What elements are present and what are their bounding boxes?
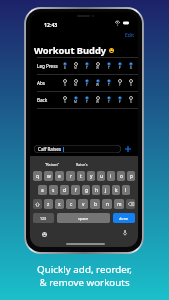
button[interactable]: k <box>112 185 120 195</box>
staticText: Abs <box>37 80 45 86</box>
staticText: space <box>78 216 89 221</box>
staticText: c <box>70 201 73 208</box>
button[interactable]: i <box>107 171 115 181</box>
button[interactable]: q <box>33 171 42 181</box>
button[interactable]: n <box>102 199 112 209</box>
staticText: u <box>100 173 103 180</box>
staticText: T <box>86 83 88 87</box>
staticText: a <box>41 187 44 194</box>
staticText: S <box>64 66 66 70</box>
button[interactable]: “Raisen” <box>44 161 61 168</box>
button[interactable]: b <box>90 199 100 209</box>
button[interactable]: g <box>82 185 90 195</box>
button[interactable]: Edit <box>121 30 138 41</box>
staticText: Edit <box>125 32 134 39</box>
button[interactable]: Dictation <box>122 230 128 236</box>
staticText: s <box>52 187 55 194</box>
staticText: S <box>130 83 132 87</box>
button[interactable]: Add workout <box>123 144 133 154</box>
button[interactable]: t <box>77 171 85 181</box>
staticText: S <box>130 100 132 104</box>
button[interactable]: m <box>114 199 124 209</box>
button[interactable]: r <box>66 171 75 181</box>
staticText: i <box>110 173 112 180</box>
staticText: p <box>130 173 133 180</box>
button[interactable]: v <box>78 199 88 209</box>
button[interactable]: space <box>57 213 110 223</box>
staticText: T <box>86 66 88 70</box>
staticText: r <box>70 173 72 180</box>
button[interactable]: j <box>102 185 110 195</box>
button[interactable]: done <box>113 213 135 223</box>
button[interactable]: u <box>97 171 105 181</box>
button[interactable]: Calf Raises <box>34 145 121 153</box>
button[interactable]: f <box>71 185 80 195</box>
button[interactable]: d <box>60 185 69 195</box>
button[interactable]: 123 <box>33 213 54 223</box>
staticText: l <box>125 187 127 194</box>
button[interactable]: s <box>49 185 58 195</box>
button[interactable]: Abs <box>30 75 138 91</box>
staticText: T <box>108 66 110 70</box>
staticText: x <box>58 201 61 208</box>
button[interactable]: Backspace <box>126 199 135 209</box>
button[interactable]: Emoji keyboard <box>41 231 47 237</box>
button[interactable]: Leg Press <box>30 58 138 74</box>
staticText: T <box>86 100 88 104</box>
staticText: M <box>74 66 77 70</box>
staticText: W <box>96 83 99 87</box>
staticText: Back <box>37 97 48 103</box>
staticText: m <box>117 201 122 208</box>
staticText: M <box>74 83 77 87</box>
staticText: S <box>130 66 132 70</box>
button[interactable]: a <box>38 185 47 195</box>
button[interactable]: o <box>117 171 125 181</box>
staticText: & remove workouts <box>39 276 130 289</box>
staticText: g <box>85 187 88 194</box>
button[interactable]: Back <box>30 92 138 108</box>
button[interactable]: y <box>87 171 95 181</box>
button[interactable]: Shift <box>33 199 42 209</box>
staticText: h <box>95 187 98 194</box>
staticText: M <box>74 100 77 104</box>
button[interactable]: z <box>44 199 53 209</box>
staticText: F <box>119 83 121 87</box>
staticText: e <box>58 173 61 180</box>
button[interactable]: w <box>44 171 53 181</box>
button[interactable]: c <box>66 199 76 209</box>
staticText: T <box>108 83 110 87</box>
staticText: T <box>108 100 110 104</box>
staticText: Leg Press <box>37 63 58 69</box>
staticText: o <box>120 173 123 180</box>
staticText: f <box>75 187 77 194</box>
staticText: “Raisen” <box>45 162 60 167</box>
staticText: n <box>106 201 109 208</box>
button[interactable]: e <box>55 171 64 181</box>
staticText: w <box>47 173 51 180</box>
staticText: k <box>115 187 118 194</box>
staticText: b <box>94 201 97 208</box>
staticText: F <box>119 66 121 70</box>
staticText: W <box>96 100 99 104</box>
staticText: F <box>119 100 121 104</box>
staticText: 123 <box>40 216 47 221</box>
button[interactable]: Raise's <box>75 161 89 168</box>
staticText: W <box>96 66 99 70</box>
staticText: j <box>105 187 107 194</box>
button[interactable]: x <box>55 199 64 209</box>
staticText: z <box>47 201 50 208</box>
staticText: q <box>36 173 39 180</box>
staticText: done <box>119 216 129 221</box>
button[interactable]: p <box>127 171 135 181</box>
staticText: t <box>80 173 82 180</box>
staticText: y <box>90 173 93 180</box>
staticText: S <box>64 100 66 104</box>
button[interactable]: l <box>122 185 130 195</box>
staticText: d <box>63 187 66 194</box>
staticText: Quickly add, reorder, <box>37 263 132 276</box>
staticText: Calf Raises <box>38 146 62 152</box>
button[interactable]: h <box>92 185 100 195</box>
staticText: Workout Buddy <box>34 44 107 57</box>
staticText: Raise's <box>76 162 88 167</box>
staticText: 12:43 <box>44 21 58 28</box>
